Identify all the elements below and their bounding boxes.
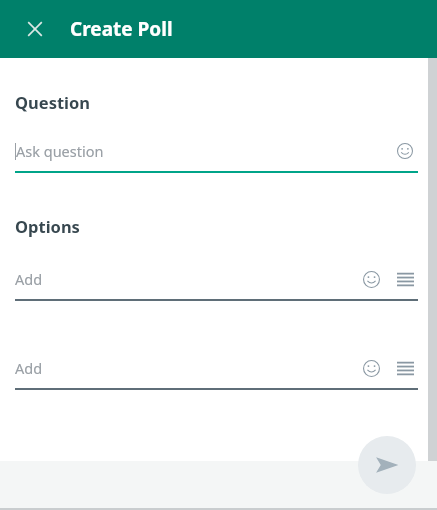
button[interactable]: Reorder option	[392, 266, 418, 292]
staticText: Add	[15, 269, 43, 289]
button[interactable]: Close	[18, 12, 52, 46]
staticText: Create Poll	[70, 16, 173, 42]
staticText: Add	[15, 358, 43, 378]
staticText: Options	[15, 215, 80, 237]
button[interactable]: Insert emoji	[358, 355, 384, 381]
button[interactable]: Send poll	[358, 436, 416, 494]
button[interactable]: Reorder option	[392, 355, 418, 381]
staticText: Question	[15, 91, 91, 113]
staticText: Ask question	[16, 141, 104, 161]
button[interactable]: Insert emoji	[358, 266, 384, 292]
button[interactable]: Insert emoji	[392, 138, 418, 164]
